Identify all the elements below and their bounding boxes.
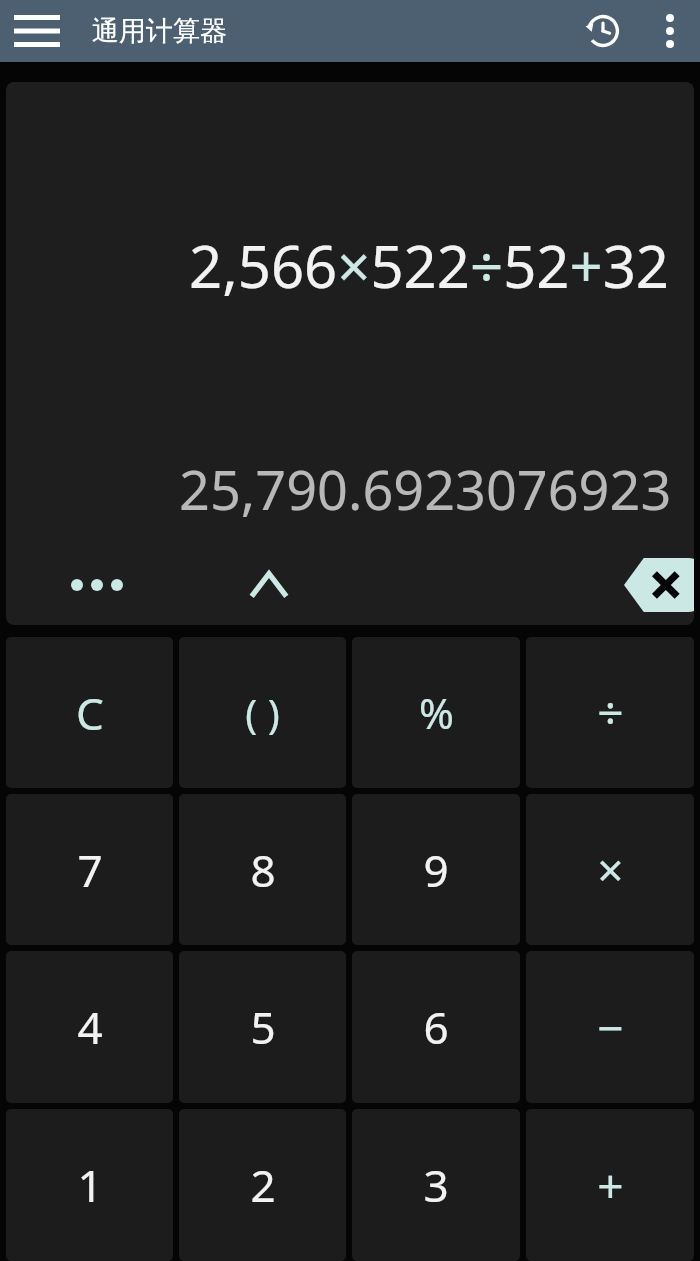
button[interactable]: 8 — [179, 794, 346, 945]
staticText: 通用计算器 — [92, 14, 227, 48]
staticText: 9 — [423, 840, 449, 900]
button[interactable]: More pad options — [52, 545, 142, 625]
button[interactable]: More options — [642, 3, 698, 59]
button[interactable]: C — [6, 637, 173, 788]
button[interactable]: ÷ — [526, 637, 694, 788]
staticText: 8 — [250, 840, 276, 900]
button[interactable]: + — [526, 1109, 694, 1261]
button[interactable]: % — [352, 637, 520, 788]
button[interactable]: Backspace — [616, 545, 694, 625]
staticText: × — [597, 838, 624, 901]
button[interactable]: 1 — [6, 1109, 173, 1261]
staticText: ÷ — [597, 681, 624, 744]
staticText: + — [597, 1154, 624, 1217]
button[interactable]: 9 — [352, 794, 520, 945]
staticText: % — [419, 684, 454, 741]
staticText: 3 — [423, 1155, 449, 1215]
staticText: 2 — [250, 1155, 276, 1215]
staticText: 2,566×522÷52+32 — [189, 226, 670, 305]
staticText: 7 — [77, 840, 103, 900]
staticText: 25,790.6923076923 — [179, 452, 672, 526]
button[interactable]: 7 — [6, 794, 173, 945]
button[interactable]: − — [526, 951, 694, 1103]
button[interactable]: 3 — [352, 1109, 520, 1261]
staticText: ( ) — [245, 686, 280, 740]
button[interactable]: 6 — [352, 951, 520, 1103]
staticText: 6 — [423, 997, 449, 1057]
staticText: C — [76, 683, 104, 743]
button[interactable]: 5 — [179, 951, 346, 1103]
button[interactable]: 4 — [6, 951, 173, 1103]
button[interactable]: ( ) — [179, 637, 346, 788]
button[interactable]: × — [526, 794, 694, 945]
button[interactable]: 2 — [179, 1109, 346, 1261]
staticText: 4 — [77, 997, 103, 1057]
staticText: 5 — [250, 997, 276, 1057]
button[interactable]: Open navigation menu — [6, 0, 68, 62]
staticText: 1 — [77, 1155, 103, 1215]
button[interactable]: Expand — [224, 545, 314, 625]
button[interactable]: History — [572, 0, 634, 62]
staticText: − — [597, 996, 624, 1059]
